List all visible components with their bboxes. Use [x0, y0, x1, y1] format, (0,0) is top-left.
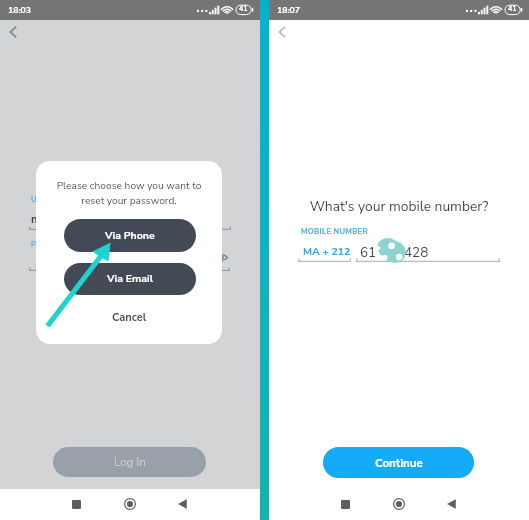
staticText: What's your mobile number? — [269, 197, 529, 216]
button[interactable]: Back — [439, 492, 463, 516]
staticText: MA + 212 — [303, 244, 351, 258]
button[interactable]: Recents — [64, 492, 88, 516]
staticText: 61 428 — [360, 243, 429, 261]
staticText: 18:07 — [277, 4, 301, 16]
button[interactable]: Back — [269, 19, 295, 45]
staticText: PASSWORD — [31, 239, 78, 249]
button[interactable]: Continue — [323, 447, 474, 478]
button[interactable]: Via Email — [64, 263, 196, 295]
staticText: Please choose how you want to reset your… — [36, 179, 222, 207]
staticText: USERNAME — [31, 194, 76, 204]
button[interactable]: Cancel — [36, 304, 222, 331]
staticText: Continue — [375, 455, 423, 471]
staticText: 41 — [508, 4, 517, 14]
staticText: mohamed — [31, 211, 84, 227]
staticText: 18:03 — [8, 4, 32, 16]
button[interactable]: Home — [387, 492, 411, 516]
button[interactable]: Back — [0, 19, 26, 45]
button[interactable]: Log In — [53, 447, 206, 477]
staticText: MOBILE NUMBER — [301, 226, 368, 236]
staticText: Via Phone — [105, 228, 155, 242]
button[interactable]: Via Phone — [64, 219, 196, 252]
staticText: Via Email — [107, 271, 153, 285]
staticText: Log In — [114, 454, 146, 470]
button[interactable]: Recents — [333, 492, 357, 516]
staticText: Cancel — [112, 310, 147, 325]
button[interactable]: Home — [118, 492, 142, 516]
button[interactable]: Back — [170, 492, 194, 516]
staticText: 41 — [239, 4, 248, 14]
